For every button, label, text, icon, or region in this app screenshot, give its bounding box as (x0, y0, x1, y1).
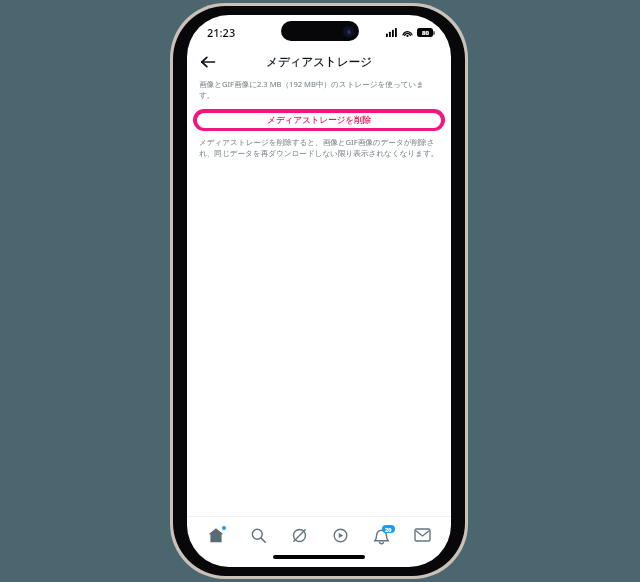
button[interactable]: Search (237, 517, 279, 553)
staticText: 80 (422, 29, 429, 37)
button[interactable]: Home (195, 517, 237, 553)
staticText: メディアストレージ (266, 55, 372, 69)
button[interactable]: Back (195, 49, 221, 75)
staticText: メディアストレージを削除 (267, 115, 371, 126)
staticText: 画像とGIF画像に2.3 MB（192 MB中）のストレージを使っています。 (199, 79, 437, 100)
button[interactable]: Grok (279, 517, 320, 553)
staticText: メディアストレージを削除すると、画像とGIF画像のデータが削除され、同じデータを… (199, 137, 439, 158)
button[interactable]: Messages (402, 517, 443, 553)
button[interactable]: Notifications (361, 517, 402, 553)
staticText: 21:23 (207, 25, 236, 40)
button[interactable]: メディアストレージを削除 (193, 109, 445, 131)
staticText: 20 (385, 526, 392, 533)
button[interactable]: Videos (320, 517, 361, 553)
